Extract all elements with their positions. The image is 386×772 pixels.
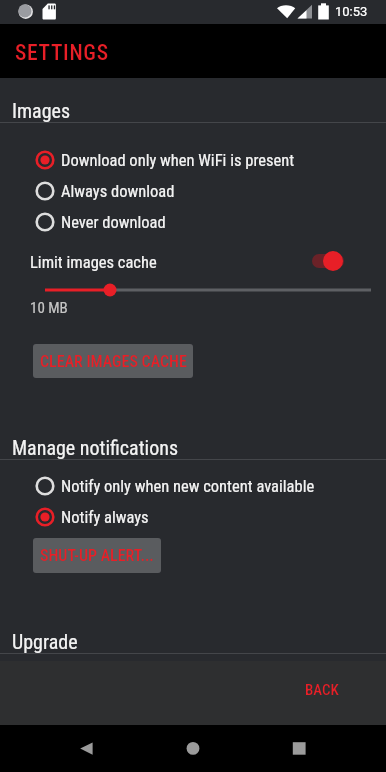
staticText: Download only when WiFi is present xyxy=(61,151,295,170)
button[interactable]: Recents xyxy=(273,725,325,772)
button[interactable]: Download only when WiFi is present xyxy=(0,144,386,176)
staticText: Images xyxy=(12,99,70,122)
button[interactable]: CLEAR IMAGES CACHE xyxy=(33,344,193,378)
staticText: 10 MB xyxy=(30,299,68,317)
staticText: 10:53 xyxy=(335,4,368,19)
staticText: Notify always xyxy=(61,508,149,527)
staticText: BACK xyxy=(305,681,339,699)
staticText: CLEAR IMAGES CACHE xyxy=(40,352,187,371)
button[interactable]: Notify only when new content available xyxy=(0,470,386,502)
staticText: SETTINGS xyxy=(15,40,109,65)
button[interactable]: Always download xyxy=(0,175,386,207)
button[interactable]: BACK xyxy=(295,673,349,707)
staticText: SHUT-UP ALERT... xyxy=(40,546,154,565)
button[interactable]: Back xyxy=(62,725,114,772)
button[interactable]: Notify always xyxy=(0,501,386,533)
staticText: Manage notifications xyxy=(12,436,178,459)
staticText: Notify only when new content available xyxy=(61,477,315,496)
staticText: Always download xyxy=(61,182,175,201)
button[interactable]: Cache size slider xyxy=(0,280,386,300)
button[interactable]: SHUT-UP ALERT... xyxy=(33,538,161,573)
staticText: Never download xyxy=(61,213,166,232)
button[interactable]: Home xyxy=(167,725,219,772)
button[interactable]: Never download xyxy=(0,206,386,238)
staticText: Limit images cache xyxy=(30,253,157,272)
button[interactable]: Limit images cache xyxy=(0,245,386,279)
staticText: Upgrade xyxy=(12,630,78,653)
